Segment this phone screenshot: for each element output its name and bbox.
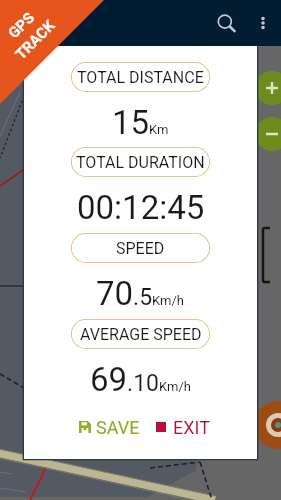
staticText: 69.10Km/h: [90, 360, 191, 399]
staticText: TOTAL DISTANCE: [77, 68, 204, 87]
staticText: AVERAGE SPEED: [80, 325, 202, 344]
staticText: TRACK: [12, 16, 59, 63]
button[interactable]: TOTAL DURATION: [71, 147, 210, 177]
staticText: SAVE: [96, 417, 140, 438]
button[interactable]: Search: [209, 6, 243, 40]
staticText: 00:12:45: [77, 188, 205, 227]
staticText: TOTAL DURATION: [76, 153, 205, 172]
staticText: EXIT: [173, 417, 210, 438]
button[interactable]: SPEED: [71, 233, 210, 263]
button[interactable]: More options: [246, 6, 280, 40]
staticText: SPEED: [116, 239, 165, 258]
staticText: 70.5Km/h: [96, 274, 185, 313]
button[interactable]: AVERAGE SPEED: [71, 319, 210, 349]
button[interactable]: EXIT: [156, 416, 210, 438]
staticText: GPS: [5, 8, 39, 42]
button[interactable]: SAVE: [79, 416, 140, 438]
button[interactable]: TOTAL DISTANCE: [71, 62, 210, 92]
staticText: 15Km: [112, 103, 169, 142]
